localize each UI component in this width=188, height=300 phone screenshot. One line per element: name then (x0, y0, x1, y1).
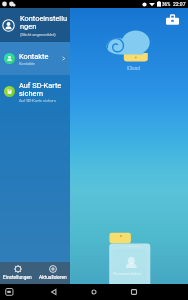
button[interactable]: Aktualisieren (35, 262, 70, 284)
staticText: Personendaten (113, 271, 142, 276)
staticText: 36% (162, 2, 171, 7)
staticText: Auf SD-Karte sichern (19, 81, 70, 98)
button[interactable]: Auf SD-Karte sichern (0, 75, 70, 108)
button[interactable]: Einstellungen (0, 262, 35, 284)
button[interactable]: Recents (114, 284, 154, 300)
staticText: Auf SD-Karte sichern (19, 98, 56, 103)
staticText: Kontoeinstellungen (20, 14, 70, 31)
staticText: iCloud (127, 66, 140, 71)
staticText: Kontakte (19, 61, 35, 66)
staticText: Einstellungen (3, 275, 32, 281)
staticText: Aktualisieren (39, 275, 67, 281)
staticText: Kontakte (19, 52, 49, 61)
button[interactable]: Home (74, 284, 114, 300)
button[interactable]: Kontoeinstellungen (0, 8, 70, 42)
button[interactable]: Back (34, 284, 74, 300)
button[interactable]: Hide keyboard (0, 284, 24, 300)
staticText: (Nicht angemeldet) (20, 32, 56, 37)
staticText: 22:07 (173, 1, 186, 7)
button[interactable]: Kontakte (0, 42, 70, 75)
button[interactable]: Backup tools (166, 15, 179, 26)
